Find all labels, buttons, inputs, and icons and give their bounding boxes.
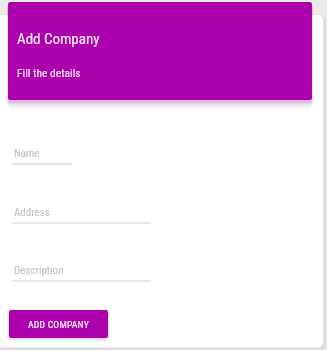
- staticText: Name: [14, 147, 40, 160]
- staticText: Address: [14, 206, 50, 219]
- button[interactable]: Address: [12, 206, 151, 224]
- staticText: Fill the details: [17, 66, 81, 79]
- staticText: Description: [14, 264, 64, 277]
- button[interactable]: Name: [12, 147, 72, 165]
- button[interactable]: Description: [12, 264, 151, 282]
- button[interactable]: ADD COMPANY: [9, 310, 108, 338]
- staticText: ADD COMPANY: [28, 319, 89, 330]
- staticText: Add Company: [17, 30, 100, 48]
